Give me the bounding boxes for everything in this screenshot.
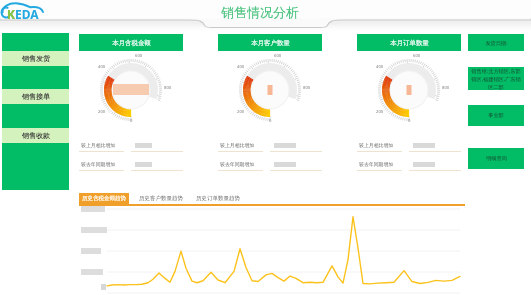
button[interactable]: 较去年同期增加 [79, 160, 183, 174]
staticText: 历史客户数量趋势 [139, 195, 183, 202]
staticText: 600 [135, 53, 143, 59]
staticText: 发货日期: [485, 39, 508, 46]
staticText: 较去年同期增加 [81, 161, 116, 167]
button[interactable]: 本月含税金额 [79, 34, 183, 51]
staticText: 较去年同期增加 [359, 161, 394, 167]
staticText: 200 [98, 109, 106, 115]
staticText: 较去年同期增加 [220, 161, 255, 167]
staticText: 较上月相比增加 [359, 142, 394, 148]
staticText: 200 [376, 109, 384, 115]
staticText: 0 [408, 118, 411, 124]
other: KEDA logo [0, 1, 70, 19]
staticText: 800 [442, 85, 450, 91]
staticText: 400 [376, 64, 384, 70]
button[interactable]: 历史订单数量趋势 [193, 193, 243, 204]
staticText: 销售情况分析 [221, 4, 299, 20]
button[interactable]: 较上月相比增加 [79, 141, 183, 155]
staticText: 0 [130, 118, 133, 124]
button[interactable]: 销售收款 [2, 128, 69, 143]
staticText: 历史含税金额趋势 [82, 195, 126, 202]
button[interactable]: 本月订单数量 [357, 34, 461, 51]
button[interactable]: 销售组:北方销区,东部销区,福建销区,广东销区二部 [468, 67, 524, 90]
staticText: 较上月相比增加 [220, 142, 255, 148]
staticText: 销售收款 [22, 131, 50, 140]
button[interactable]: 本月客户数量 [218, 34, 322, 51]
staticText: 本月含税金额 [112, 39, 151, 47]
button[interactable]: 较上月相比增加 [357, 141, 461, 155]
staticText: 0 [269, 118, 272, 124]
button[interactable]: 销售发货 [2, 51, 69, 66]
button[interactable]: 较去年同期增加 [357, 160, 461, 174]
staticText: 事业部 [488, 112, 504, 119]
staticText: 800 [164, 85, 172, 91]
staticText: 400 [237, 64, 245, 70]
staticText: 销售发货 [22, 54, 50, 63]
staticText: 400 [98, 64, 106, 70]
staticText: 600 [413, 53, 421, 59]
staticText: 本月客户数量 [251, 39, 290, 47]
button[interactable]: 较去年同期增加 [218, 160, 322, 174]
button[interactable]: 历史含税金额趋势 [79, 193, 129, 204]
button[interactable]: 较上月相比增加 [218, 141, 322, 155]
staticText: 800 [303, 85, 311, 91]
button[interactable]: 历史客户数量趋势 [136, 193, 186, 204]
staticText: 销售接单 [22, 92, 50, 101]
staticText: 较上月相比增加 [81, 142, 116, 148]
button[interactable]: 发货日期: [468, 34, 524, 51]
button[interactable]: 销售接单 [2, 89, 69, 104]
staticText: 明细查询 [486, 155, 507, 162]
staticText: KEDA [7, 6, 39, 22]
staticText: K [7, 6, 15, 22]
button[interactable]: 明细查询 [468, 148, 524, 169]
staticText: 历史订单数量趋势 [196, 195, 240, 202]
staticText: 600 [274, 53, 282, 59]
button[interactable]: 事业部 [468, 105, 524, 126]
staticText: 销售组:北方销区,东部销区,福建销区,广东销区二部 [470, 67, 522, 90]
staticText: 本月订单数量 [390, 39, 429, 47]
staticText: 200 [237, 109, 245, 115]
